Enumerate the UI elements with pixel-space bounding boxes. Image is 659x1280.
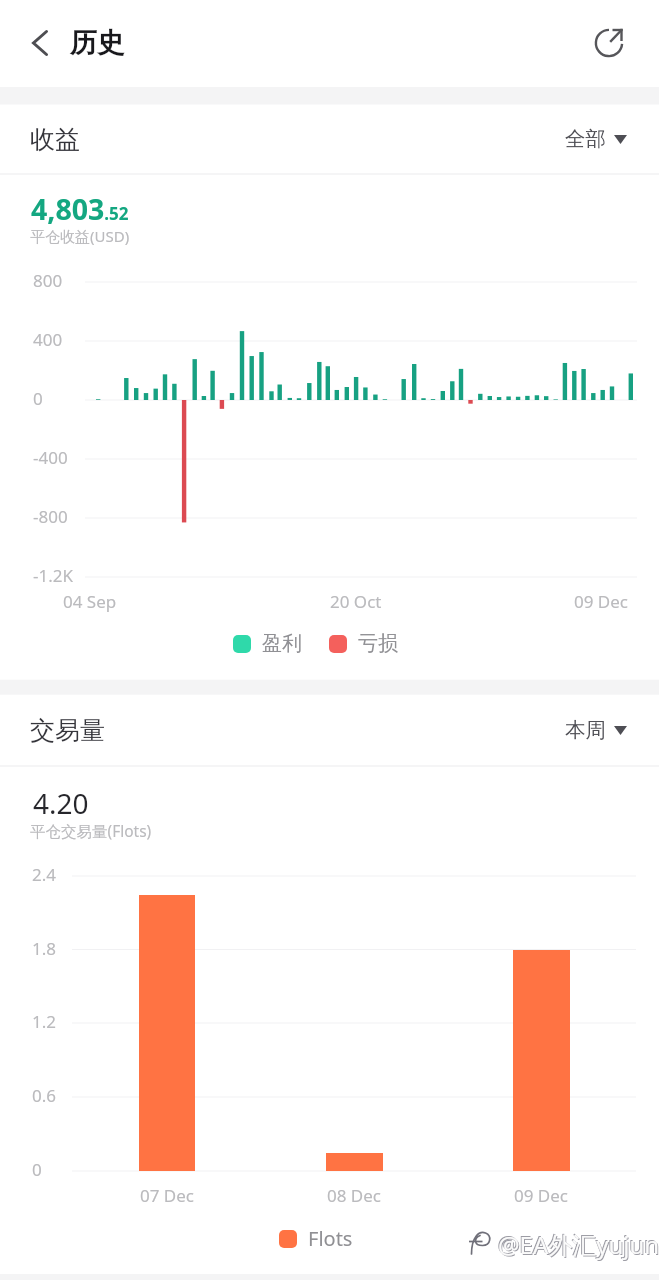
- staticText: 400: [33, 328, 63, 351]
- staticText: -400: [33, 446, 68, 469]
- staticText: 平仓收益(USD): [30, 226, 130, 246]
- staticText: 4.20: [33, 784, 89, 822]
- staticText: 0: [32, 1158, 42, 1181]
- button[interactable]: Share: [580, 14, 638, 72]
- staticText: 09 Dec: [574, 590, 629, 613]
- staticText: 04 Sep: [63, 590, 117, 613]
- staticText: 收益: [30, 124, 80, 155]
- staticText: @EA外汇yujun: [499, 1229, 659, 1262]
- button[interactable]: Back: [11, 14, 69, 72]
- staticText: 亏损: [358, 631, 398, 656]
- staticText: 2.4: [32, 863, 57, 886]
- staticText: 20 Oct: [330, 590, 382, 613]
- staticText: 全部: [565, 126, 606, 152]
- button[interactable]: 盈利: [233, 631, 302, 656]
- staticText: 800: [33, 269, 63, 292]
- staticText: 08 Dec: [327, 1184, 382, 1207]
- staticText: 盈利: [262, 631, 302, 656]
- staticText: 历史: [70, 26, 124, 60]
- staticText: 07 Dec: [140, 1184, 195, 1207]
- staticText: 平仓交易量(Flots): [30, 820, 152, 841]
- staticText: @EA外汇yujun: [497, 1227, 659, 1260]
- button[interactable]: 全部: [565, 126, 627, 152]
- staticText: -800: [33, 505, 68, 528]
- staticText: 4,803.52: [31, 190, 129, 229]
- button[interactable]: 本周: [565, 717, 627, 743]
- staticText: Flots: [308, 1225, 353, 1252]
- staticText: 本周: [565, 717, 606, 743]
- staticText: -1.2K: [33, 564, 74, 587]
- staticText: 交易量: [30, 715, 105, 746]
- staticText: 1.8: [32, 937, 57, 960]
- staticText: 1.2: [32, 1010, 57, 1033]
- staticText: 0.6: [32, 1084, 57, 1107]
- staticText: 0: [33, 387, 43, 410]
- button[interactable]: Flots: [279, 1225, 353, 1252]
- button[interactable]: 亏损: [329, 631, 398, 656]
- staticText: 09 Dec: [514, 1184, 569, 1207]
- staticText: @EA外汇yujun: [498, 1228, 659, 1261]
